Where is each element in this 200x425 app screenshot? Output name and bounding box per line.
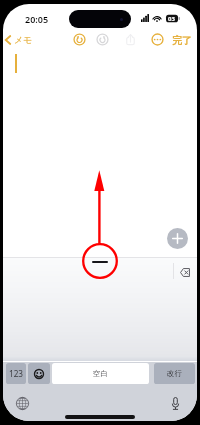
button[interactable]: Switch keyboard language (16, 397, 29, 410)
button[interactable]: Backspace (180, 268, 190, 277)
button[interactable]: 改行 (154, 363, 195, 384)
button[interactable]: Add attachment (167, 228, 188, 249)
button[interactable]: Share (124, 33, 137, 46)
button[interactable]: Dictation (171, 397, 180, 410)
staticText: 20:05 (25, 13, 49, 25)
staticText: 空白 (93, 369, 108, 378)
button[interactable]: 空白 (52, 363, 149, 384)
staticText: 改行 (167, 369, 182, 378)
button[interactable]: 完了 (172, 34, 192, 47)
button[interactable]: メモ (5, 33, 33, 46)
staticText: 123 (9, 368, 24, 379)
button[interactable]: 123 (6, 363, 26, 384)
staticText: 完了 (172, 34, 192, 47)
button[interactable]: More options (151, 33, 164, 46)
staticText: 03 (168, 15, 175, 23)
button[interactable]: Redo (96, 33, 109, 46)
button[interactable]: Emoji keyboard (28, 363, 50, 384)
button[interactable]: Undo (73, 33, 86, 46)
staticText: メモ (14, 34, 33, 45)
